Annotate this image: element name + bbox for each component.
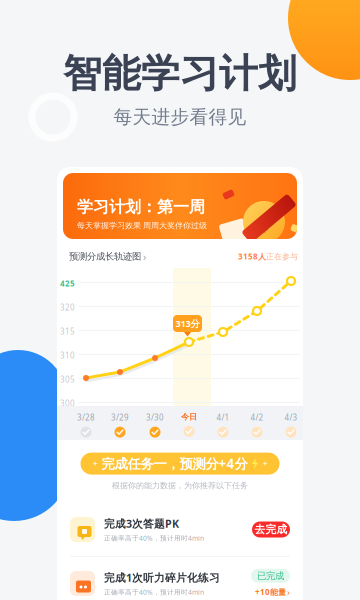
staticText: ›: [287, 586, 290, 598]
staticText: 4/2: [250, 412, 263, 423]
staticText: 正在参与: [266, 252, 298, 261]
staticText: 313分: [175, 317, 199, 330]
button[interactable]: 预测分成长轨迹图: [69, 245, 146, 268]
staticText: 4/3: [284, 412, 297, 423]
staticText: 每天掌握学习效果 周周大奖伴你过级: [77, 221, 207, 230]
button[interactable]: 完成1次听力碎片化练习: [57, 557, 303, 600]
staticText: 310: [60, 350, 75, 361]
staticText: +10能量: [255, 587, 286, 597]
staticText: 每天进步看得见: [113, 105, 246, 128]
staticText: 根据你的能力数据，为你推荐以下任务: [112, 481, 248, 490]
staticText: 今日: [181, 412, 197, 422]
staticText: ¥: [259, 213, 270, 238]
staticText: 完成任务一，预测分+4分: [101, 455, 247, 472]
staticText: 3158人: [238, 251, 266, 262]
staticText: 去完成: [254, 523, 287, 536]
staticText: 320: [60, 302, 75, 313]
staticText: 300: [60, 398, 75, 409]
staticText: 学习计划：第一周: [77, 197, 205, 217]
staticText: 完成3次答题PK: [104, 516, 179, 531]
staticText: 正确率高于40%，预计用时4min: [104, 534, 204, 543]
staticText: 预测分成长轨迹图: [69, 251, 141, 262]
staticText: 425: [60, 278, 75, 289]
staticText: 已完成: [257, 570, 284, 582]
staticText: 315: [60, 326, 75, 337]
button[interactable]: 完成3次答题PK: [57, 503, 303, 556]
staticText: 3/29: [111, 412, 129, 423]
staticText: 3/28: [77, 412, 95, 423]
staticText: 完成1次听力碎片化练习: [104, 570, 220, 585]
staticText: 智能学习计划: [63, 50, 297, 97]
staticText: 正确率高于40%，预计用时4min: [104, 588, 204, 597]
staticText: ›: [143, 249, 146, 264]
staticText: 4/1: [216, 412, 229, 423]
staticText: 305: [60, 374, 75, 385]
staticText: 3/30: [146, 412, 164, 423]
